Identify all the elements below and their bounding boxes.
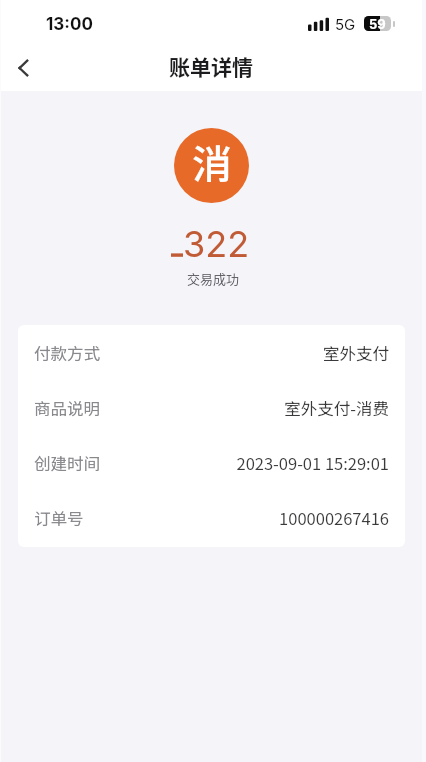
staticText: 账单详情	[169, 51, 253, 81]
button[interactable]: 创建时间	[34, 435, 389, 490]
button[interactable]: 订单号	[34, 490, 389, 545]
staticText: 付款方式	[34, 341, 100, 365]
button[interactable]: 付款方式	[34, 325, 389, 380]
staticText: 创建时间	[34, 451, 100, 475]
staticText: 322	[183, 222, 250, 266]
staticText: 消	[192, 133, 232, 191]
staticText: 100000267416	[279, 506, 389, 530]
staticText: 13:00	[46, 14, 93, 35]
staticText: 59	[369, 16, 386, 30]
staticText: 5G	[335, 15, 356, 33]
staticText: 商品说明	[34, 396, 100, 420]
button[interactable]: Back	[0, 45, 46, 91]
button[interactable]: 商品说明	[34, 380, 389, 435]
staticText: 交易成功	[187, 269, 240, 288]
staticText: 室外支付-消费	[284, 396, 389, 420]
staticText: 订单号	[34, 506, 84, 530]
staticText: 室外支付	[323, 341, 389, 365]
staticText: 2023-09-01 15:29:01	[236, 451, 389, 475]
